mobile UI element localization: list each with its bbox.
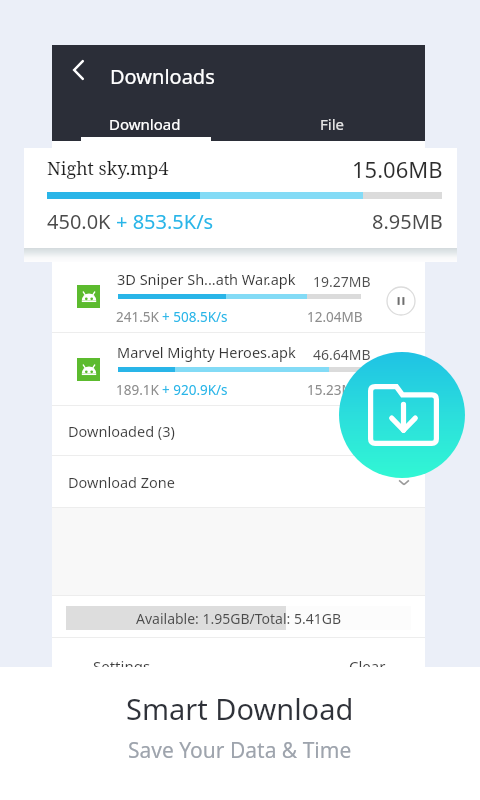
staticText: Download Zone bbox=[68, 472, 175, 492]
staticText: Downloaded (3) bbox=[68, 421, 175, 441]
staticText: 19.27MB bbox=[313, 272, 371, 291]
staticText: Night sky.mp4 bbox=[47, 156, 169, 181]
staticText: Available: 1.95GB/Total: 5.41GB bbox=[136, 609, 342, 628]
button[interactable]: Back bbox=[58, 50, 98, 90]
staticText: Downloads bbox=[110, 63, 215, 90]
staticText: Clear bbox=[349, 656, 386, 676]
staticText: 12.04MB bbox=[307, 308, 363, 326]
staticText: + 853.5K/s bbox=[116, 208, 214, 235]
staticText: 15.23MB bbox=[307, 381, 363, 399]
staticText: Download bbox=[109, 114, 181, 134]
button[interactable]: Pause bbox=[381, 281, 420, 320]
staticText: Save Your Data & Time bbox=[128, 736, 352, 765]
staticText: 241.5K bbox=[116, 308, 159, 326]
button[interactable]: Marvel Mighty Heroes.apk bbox=[52, 333, 425, 405]
staticText: File bbox=[320, 114, 344, 134]
staticText: Marvel Mighty Heroes.apk bbox=[117, 342, 296, 362]
button[interactable]: Download Zone bbox=[52, 456, 425, 507]
staticText: 46.64MB bbox=[313, 345, 371, 364]
staticText: 8.95MB bbox=[372, 208, 443, 235]
staticText: 189.1K bbox=[116, 381, 159, 399]
button[interactable]: Download folder bbox=[339, 352, 465, 478]
button[interactable]: File bbox=[238, 109, 425, 139]
button[interactable]: Download bbox=[52, 109, 238, 139]
staticText: Smart Download bbox=[126, 689, 354, 728]
staticText: 3D Sniper Sh...ath War.apk bbox=[117, 269, 296, 289]
staticText: Settings bbox=[93, 656, 151, 676]
staticText: + 508.5K/s bbox=[162, 308, 228, 326]
button[interactable]: Settings bbox=[52, 638, 238, 667]
staticText: 450.0K bbox=[47, 208, 116, 235]
button[interactable]: Downloaded (3) bbox=[52, 406, 425, 455]
button[interactable]: 3D Sniper Sh...ath War.apk bbox=[52, 260, 425, 332]
button[interactable]: Clear bbox=[238, 638, 425, 667]
staticText: 15.06MB bbox=[352, 154, 443, 184]
staticText: + 920.9K/s bbox=[162, 381, 228, 399]
